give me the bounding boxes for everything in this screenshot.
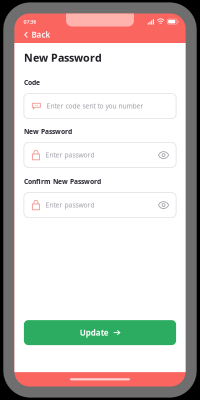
button[interactable]: Back: [14, 26, 186, 43]
staticText: Update: [80, 327, 109, 338]
button[interactable]: Show password: [158, 202, 169, 208]
staticText: New Password: [24, 127, 72, 136]
staticText: Enter password: [45, 151, 94, 159]
staticText: 07:36: [23, 18, 36, 25]
button[interactable]: Show password: [158, 152, 169, 158]
staticText: Confirm New Password: [24, 177, 101, 186]
staticText: Enter password: [45, 201, 94, 209]
staticText: New Password: [24, 50, 102, 65]
staticText: Code: [24, 78, 40, 87]
staticText: Back: [31, 29, 50, 40]
staticText: Enter code sent to you number: [46, 102, 143, 110]
button[interactable]: Update: [24, 320, 176, 345]
